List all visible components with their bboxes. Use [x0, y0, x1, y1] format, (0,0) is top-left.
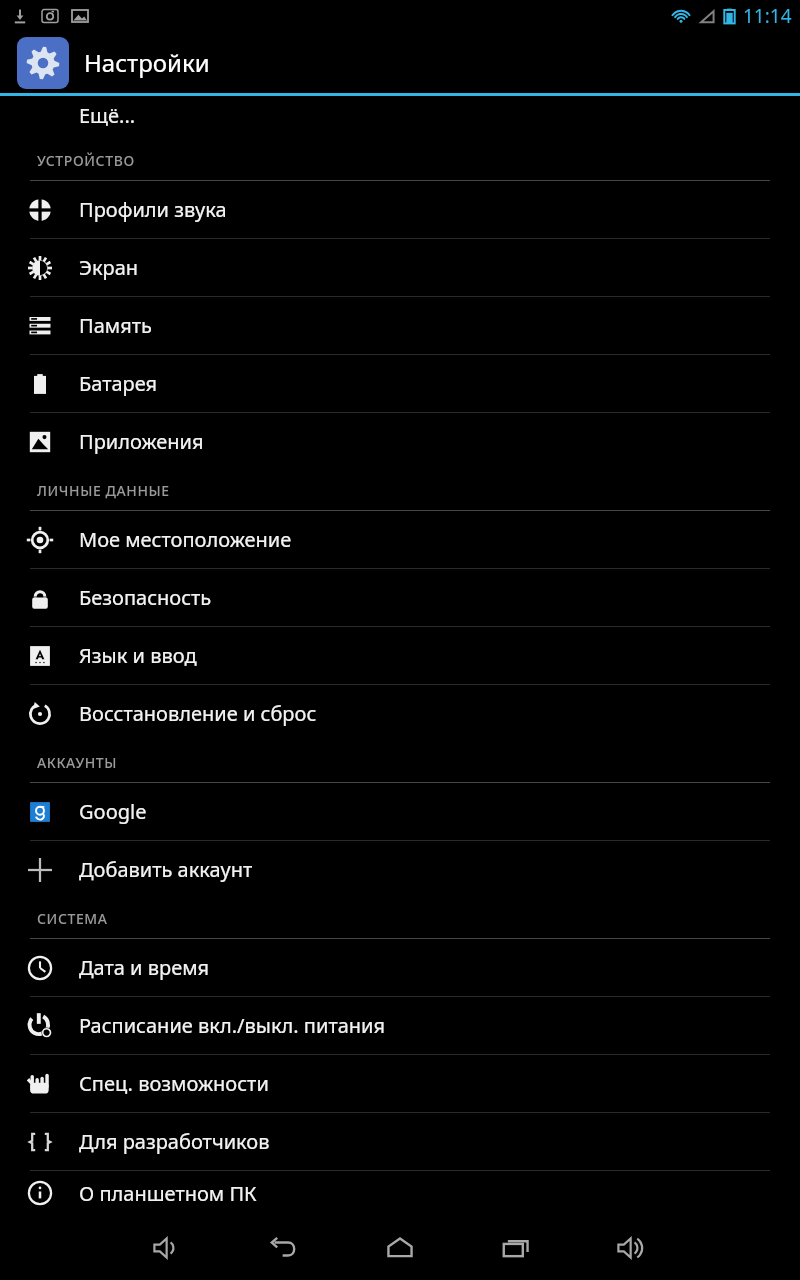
button[interactable]: О планшетном ПК [0, 1171, 800, 1215]
staticText: Добавить аккаунт [79, 856, 253, 883]
staticText: Память [79, 312, 152, 339]
button[interactable]: Дата и время [0, 939, 800, 996]
staticText: Спец. возможности [79, 1070, 269, 1097]
staticText: Настройки [84, 46, 210, 79]
button[interactable]: Язык и ввод [0, 627, 800, 684]
staticText: Ещё... [79, 102, 136, 129]
staticText: Google [79, 798, 147, 825]
staticText: Профили звука [79, 196, 227, 223]
staticText: Язык и ввод [79, 642, 197, 669]
button[interactable]: Память [0, 297, 800, 354]
staticText: Батарея [79, 370, 158, 397]
button[interactable]: Настройки [0, 32, 800, 93]
button[interactable]: Recent apps [458, 1215, 574, 1280]
button[interactable]: Добавить аккаунт [0, 841, 800, 898]
button[interactable]: Мое местоположение [0, 511, 800, 568]
staticText: Экран [79, 254, 139, 281]
staticText: Безопасность [79, 584, 212, 611]
button[interactable]: Home [342, 1215, 458, 1280]
button[interactable]: Ещё... [0, 96, 800, 134]
button[interactable]: Батарея [0, 355, 800, 412]
button[interactable]: Для разработчиков [0, 1113, 800, 1170]
button[interactable]: Безопасность [0, 569, 800, 626]
staticText: Дата и время [79, 954, 210, 981]
button[interactable]: Приложения [0, 413, 800, 470]
staticText: СИСТЕМА [37, 909, 108, 928]
staticText: АККАУНТЫ [37, 753, 118, 772]
staticText: ЛИЧНЫЕ ДАННЫЕ [37, 481, 170, 500]
staticText: О планшетном ПК [79, 1180, 257, 1207]
staticText: Приложения [79, 428, 204, 455]
button[interactable]: Back [226, 1215, 342, 1280]
staticText: Расписание вкл./выкл. питания [79, 1012, 386, 1039]
button[interactable]: Восстановление и сброс [0, 685, 800, 742]
staticText: УСТРОЙСТВО [37, 151, 135, 170]
staticText: Для разработчиков [79, 1128, 270, 1155]
staticText: Восстановление и сброс [79, 700, 317, 727]
button[interactable]: Volume down [110, 1215, 226, 1280]
button[interactable]: Расписание вкл./выкл. питания [0, 997, 800, 1054]
button[interactable]: Volume up [574, 1215, 690, 1280]
button[interactable]: Профили звука [0, 181, 800, 238]
button[interactable]: Экран [0, 239, 800, 296]
staticText: 11:14 [743, 3, 792, 29]
staticText: Мое местоположение [79, 526, 292, 553]
button[interactable]: Спец. возможности [0, 1055, 800, 1112]
button[interactable]: Google [0, 783, 800, 840]
